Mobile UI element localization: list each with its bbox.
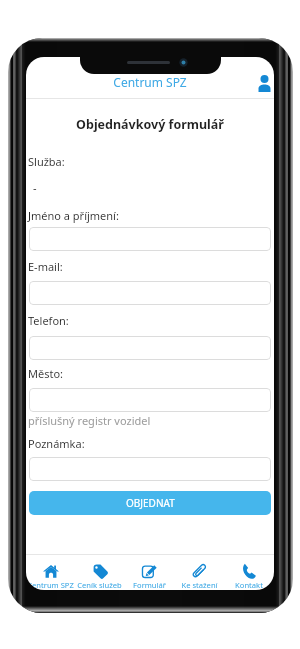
button[interactable]: Account [252, 71, 274, 95]
staticText: Ceník služeb [77, 580, 122, 590]
button[interactable]: Centrum SPZ [26, 556, 75, 590]
button[interactable] [29, 457, 271, 481]
staticText: Telefon: [28, 313, 69, 328]
staticText: Formulář [133, 580, 166, 590]
staticText: příslušný registr vozidel [28, 413, 151, 428]
staticText: Centrum SPZ [26, 74, 274, 90]
button[interactable]: Formulář [124, 556, 174, 590]
button[interactable]: Kontakt [224, 556, 274, 590]
button[interactable] [29, 388, 271, 412]
button[interactable]: OBJEDNAT [29, 491, 271, 515]
button[interactable]: Ceník služeb [75, 556, 124, 590]
staticText: Služba: [28, 154, 65, 169]
staticText: Kontakt [235, 580, 263, 590]
staticText: Ke stažení [181, 580, 218, 590]
button[interactable] [29, 336, 271, 360]
staticText: Jméno a příjmení: [28, 208, 119, 223]
staticText: Centrum SPZ [27, 580, 74, 590]
staticText: Poznámka: [28, 436, 85, 451]
button[interactable] [29, 227, 271, 251]
button[interactable] [29, 281, 271, 305]
staticText: OBJEDNAT [126, 496, 175, 510]
staticText: Objednávkový formulář [26, 116, 274, 133]
staticText: - [33, 180, 37, 195]
staticText: Město: [28, 366, 64, 381]
button[interactable]: Ke stažení [174, 556, 224, 590]
staticText: E-mail: [28, 259, 63, 274]
